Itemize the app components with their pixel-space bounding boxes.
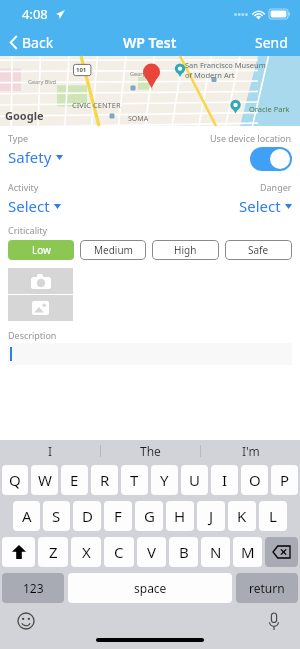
staticText: Q	[9, 470, 21, 490]
staticText: Danger	[260, 181, 292, 193]
button[interactable]: R	[91, 465, 118, 495]
button[interactable]: V	[137, 537, 166, 567]
button[interactable]: Safe	[225, 240, 292, 260]
staticText: High	[174, 243, 197, 257]
button[interactable]: J	[197, 501, 225, 531]
staticText: 101	[76, 66, 87, 74]
button[interactable]: T	[121, 465, 148, 495]
staticText: F	[114, 506, 122, 526]
button[interactable]: H	[166, 501, 194, 531]
staticText: I	[222, 470, 228, 490]
button[interactable]: Z	[38, 537, 68, 567]
button[interactable]: K	[228, 501, 256, 531]
staticText: Z	[49, 542, 58, 562]
button[interactable]: Select	[239, 196, 292, 216]
staticText: X	[82, 542, 91, 562]
staticText: C	[114, 542, 124, 562]
button[interactable]: Medium	[80, 240, 146, 260]
button[interactable]: Safety	[8, 147, 63, 167]
staticText: Description	[8, 329, 57, 341]
staticText: Safety	[8, 147, 52, 167]
button[interactable]: N	[201, 537, 230, 567]
staticText: Low	[32, 243, 51, 257]
staticText: M	[241, 542, 255, 562]
button[interactable]: O	[241, 465, 268, 495]
button[interactable]: E	[61, 465, 88, 495]
staticText: H	[174, 506, 186, 526]
button[interactable]: Choose photo	[8, 295, 73, 321]
staticText: A	[22, 506, 32, 526]
staticText: Select	[239, 196, 281, 216]
staticText: T	[130, 470, 139, 490]
staticText: Back	[22, 33, 54, 52]
staticText: I	[48, 443, 53, 459]
button[interactable]: I	[0, 440, 100, 462]
staticText: K	[237, 506, 247, 526]
button[interactable]: L	[259, 501, 287, 531]
button[interactable]: High	[152, 240, 219, 260]
button[interactable]	[8, 343, 292, 365]
staticText: W	[38, 470, 52, 490]
button[interactable]: D	[73, 501, 101, 531]
staticText: G	[144, 506, 155, 526]
staticText: L	[269, 506, 277, 526]
staticText: V	[147, 542, 157, 562]
staticText: SOMA	[128, 114, 149, 124]
staticText: WP Test	[123, 33, 177, 52]
button[interactable]: Shift	[2, 537, 35, 567]
button[interactable]: A	[13, 501, 40, 531]
staticText: Activity	[8, 181, 39, 193]
staticText: I'm	[242, 443, 260, 459]
staticText: San Francisco Museum of Modern Art	[185, 60, 266, 80]
button[interactable]: I'm	[201, 440, 300, 462]
button[interactable]: Back	[8, 31, 56, 54]
staticText: space	[134, 580, 167, 596]
button[interactable]: W	[31, 465, 58, 495]
staticText: CIVIC CENTER	[72, 100, 121, 110]
staticText: Oracle Park	[249, 104, 290, 114]
staticText: Safe	[248, 243, 269, 257]
staticText: Select	[8, 196, 50, 216]
staticText: D	[82, 506, 93, 526]
staticText: S	[52, 506, 61, 526]
staticText: E	[70, 470, 79, 490]
button[interactable]: 123	[2, 573, 64, 603]
button[interactable]: Emoji	[16, 611, 36, 631]
staticText: Type	[8, 132, 29, 144]
button[interactable]: C	[104, 537, 134, 567]
staticText: 123	[23, 580, 44, 596]
button[interactable]: Select	[8, 196, 61, 216]
staticText: P	[280, 470, 290, 490]
staticText: return	[249, 580, 285, 596]
button[interactable]: F	[104, 501, 132, 531]
button[interactable]: The	[101, 440, 200, 462]
button[interactable]: G	[135, 501, 163, 531]
staticText: B	[179, 542, 189, 562]
button[interactable]: Send	[255, 33, 300, 52]
button[interactable]: Use device location	[250, 147, 292, 171]
staticText: Google	[5, 108, 44, 123]
button[interactable]: return	[236, 573, 298, 603]
button[interactable]: Low	[8, 240, 74, 260]
button[interactable]: space	[68, 573, 232, 603]
button[interactable]: B	[169, 537, 198, 567]
button[interactable]: P	[271, 465, 298, 495]
staticText: Y	[160, 470, 169, 490]
button[interactable]: Y	[151, 465, 178, 495]
button[interactable]: Backspace	[265, 537, 298, 567]
staticText: Use device location	[210, 132, 292, 144]
button[interactable]: I	[211, 465, 238, 495]
button[interactable]: Q	[2, 465, 28, 495]
staticText: Criticality	[8, 224, 48, 236]
staticText: N	[210, 542, 222, 562]
button[interactable]: X	[71, 537, 101, 567]
staticText: U	[189, 470, 200, 490]
button[interactable]: U	[181, 465, 208, 495]
button[interactable]: S	[43, 501, 70, 531]
staticText: Medium	[94, 243, 133, 257]
staticText: R	[100, 470, 110, 490]
staticText: Geary Blvd	[28, 78, 56, 85]
button[interactable]: Dictation	[264, 611, 284, 631]
button[interactable]: Take photo	[8, 268, 73, 294]
button[interactable]: M	[233, 537, 262, 567]
